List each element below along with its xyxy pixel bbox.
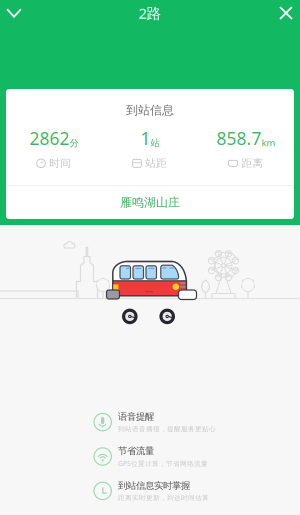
- staticText: 语音提醒: [118, 411, 154, 422]
- staticText: GPS位置计算，节省网络流量: [118, 459, 208, 468]
- staticText: km: [261, 136, 275, 149]
- staticText: 雁鸣湖山庄: [120, 195, 180, 210]
- staticText: 时间: [49, 157, 71, 170]
- staticText: 距离: [241, 157, 263, 170]
- button[interactable]: Collapse: [0, 0, 28, 26]
- button[interactable]: 到站信息实时掌握: [94, 478, 274, 504]
- staticText: 站距: [145, 157, 167, 170]
- staticText: 距离实时更新，到达时间估算: [118, 494, 209, 502]
- staticText: 到站信息: [126, 103, 174, 118]
- button[interactable]: 雁鸣湖山庄: [6, 186, 294, 219]
- staticText: 2862: [29, 127, 69, 150]
- staticText: 2路: [138, 3, 161, 23]
- staticText: 节省流量: [118, 445, 154, 457]
- staticText: 到站信息实时掌握: [118, 480, 190, 491]
- staticText: 858.7: [216, 127, 261, 150]
- staticText: 站: [150, 137, 159, 149]
- button[interactable]: 语音提醒: [94, 409, 274, 435]
- staticText: 到站语音播报，提醒服务更贴心: [118, 425, 216, 433]
- staticText: 分: [69, 137, 78, 149]
- button[interactable]: Close: [272, 0, 300, 26]
- button[interactable]: 节省流量: [94, 443, 274, 469]
- staticText: 1: [140, 127, 150, 150]
